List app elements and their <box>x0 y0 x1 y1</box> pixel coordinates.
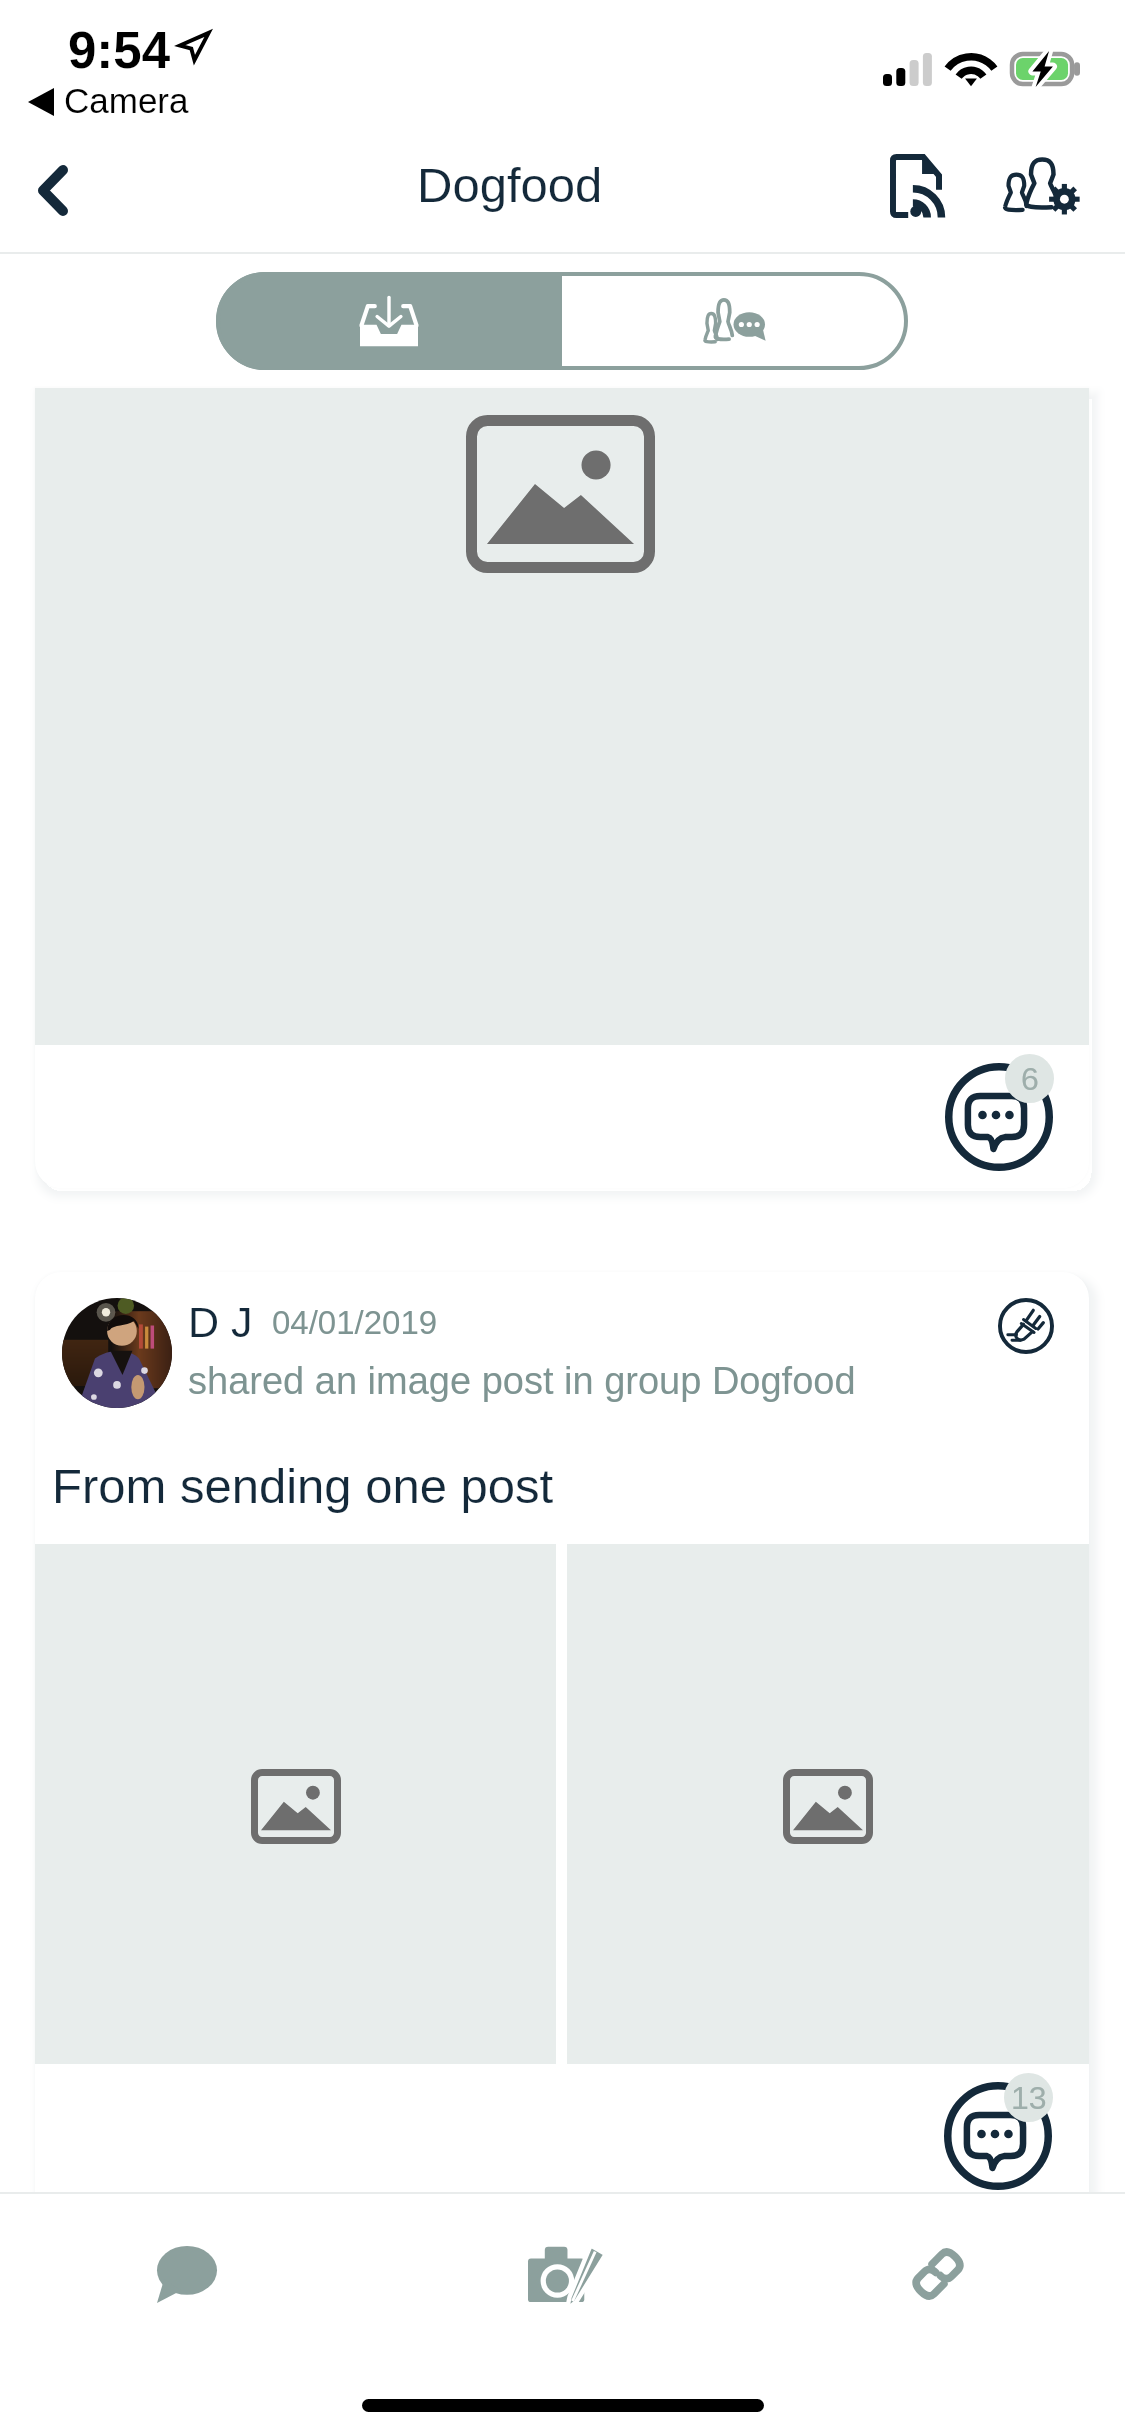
staticText: Dogfood <box>417 158 603 213</box>
button[interactable]: New post <box>509 2215 629 2335</box>
staticText: 9:54 <box>68 22 171 79</box>
button[interactable]: Comments <box>35 388 1089 1188</box>
button[interactable]: D J <box>35 1272 1089 2192</box>
button[interactable]: Chat <box>127 2214 247 2334</box>
button[interactable]: Back <box>0 140 110 252</box>
button[interactable]: Comments <box>934 1053 1089 1171</box>
staticText: 13 <box>1011 2080 1047 2116</box>
staticText: 04/01/2019 <box>272 1304 438 1341</box>
staticText: shared an image post in group Dogfood <box>188 1360 856 1402</box>
staticText: D J <box>188 1298 253 1346</box>
button[interactable]: Link <box>877 2214 997 2334</box>
staticText: 6 <box>1021 1061 1039 1097</box>
button[interactable]: Unplug <box>986 1286 1066 1366</box>
staticText: From sending one post <box>52 1459 554 1514</box>
button[interactable]: Members chat <box>562 272 908 370</box>
staticText: Camera <box>64 81 189 120</box>
button[interactable]: Broadcast <box>866 141 966 231</box>
button[interactable]: Group settings <box>981 141 1101 231</box>
button[interactable]: Inbox <box>216 272 562 370</box>
button[interactable]: Comments <box>933 2072 1089 2190</box>
